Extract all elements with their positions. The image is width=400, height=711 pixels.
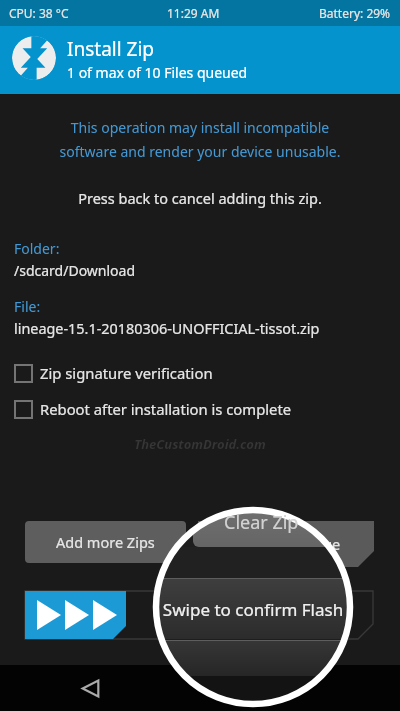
button[interactable]: Install Zip <box>0 26 400 94</box>
staticText: TheCustomDroid.com <box>0 435 400 453</box>
staticText: Folder: <box>14 239 60 258</box>
staticText: 11:29 AM <box>167 5 220 21</box>
staticText: Zip signature verification <box>40 363 213 383</box>
staticText: Reboot after installation is complete <box>40 399 292 419</box>
staticText: 1 of max of 10 Files queued <box>67 63 248 82</box>
staticText: Press back to cancel adding this zip. <box>0 188 400 208</box>
staticText: Clear Zip Queue <box>231 534 341 554</box>
staticText: Clear Zip <box>224 510 299 535</box>
button[interactable]: Reboot after installation is complete <box>0 396 400 422</box>
staticText: Swipe to confirm Flash <box>156 598 350 621</box>
staticText: Install Zip <box>67 36 155 62</box>
staticText: This operation may install incompatible … <box>0 118 400 161</box>
staticText: /sdcard/Download <box>14 261 136 280</box>
staticText: Battery: 29% <box>319 5 391 21</box>
staticText: CPU: 38 °C <box>9 5 69 21</box>
staticText: lineage-15.1-20180306-UNOFFICIAL-tissot.… <box>14 319 320 339</box>
staticText: File: <box>14 297 41 316</box>
button[interactable]: Clear Zip Queue <box>198 521 374 567</box>
button[interactable]: Add more Zips <box>25 521 186 563</box>
staticText: Add more Zips <box>56 532 155 552</box>
button[interactable] <box>25 591 373 639</box>
button[interactable]: Back <box>69 665 111 711</box>
button[interactable]: Zip signature verification <box>0 360 400 386</box>
